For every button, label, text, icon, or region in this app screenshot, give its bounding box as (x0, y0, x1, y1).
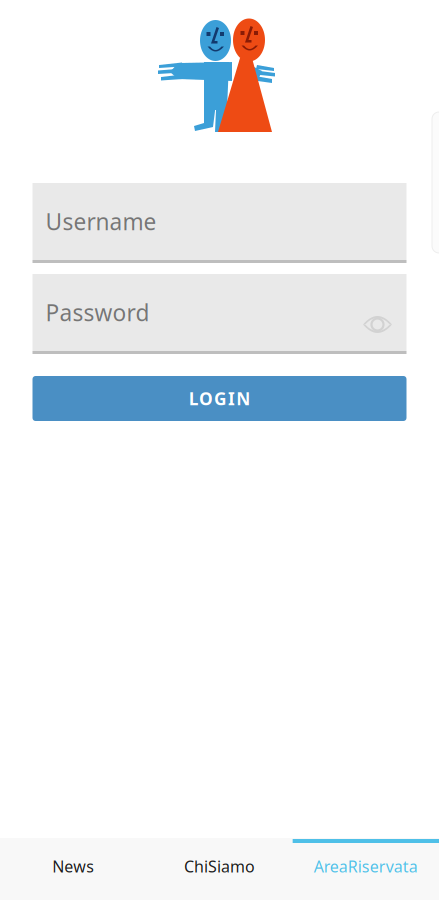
button[interactable]: LOGIN (32, 376, 406, 421)
staticText: LOGIN (189, 387, 250, 410)
staticText: Username (45, 206, 156, 236)
staticText: Password (45, 297, 149, 327)
staticText: ChiSiamo (184, 856, 255, 877)
staticText: AreaRiservata (314, 856, 418, 877)
button[interactable]: AreaRiservata (293, 838, 439, 900)
staticText: News (52, 856, 94, 877)
button[interactable]: News (0, 838, 146, 900)
button[interactable]: ChiSiamo (146, 838, 293, 900)
